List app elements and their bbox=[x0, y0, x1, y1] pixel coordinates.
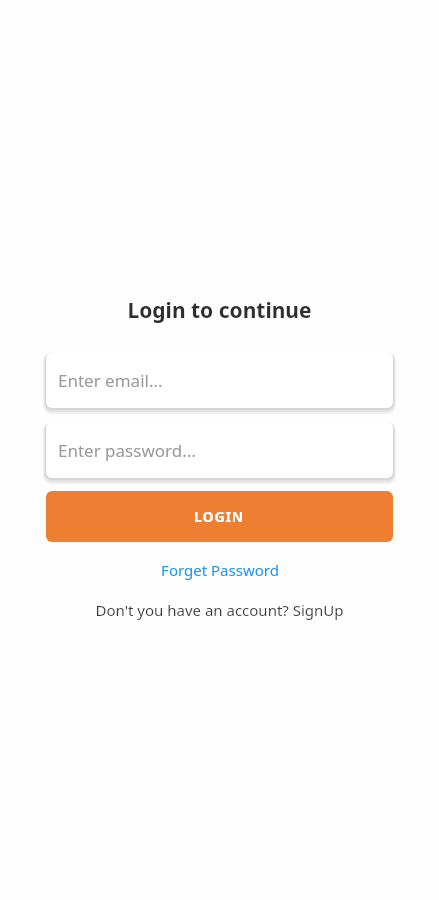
staticText: LOGIN bbox=[194, 507, 245, 526]
button[interactable]: Don't you have an account? SignUp bbox=[89, 597, 350, 623]
staticText: Enter password... bbox=[58, 439, 196, 462]
staticText: Enter email... bbox=[58, 369, 163, 392]
staticText: Login to continue bbox=[127, 296, 312, 325]
button[interactable]: LOGIN bbox=[46, 491, 393, 542]
button[interactable]: Enter password... bbox=[46, 422, 393, 478]
button[interactable]: Forget Password bbox=[155, 557, 285, 583]
staticText: Don't you have an account? SignUp bbox=[95, 600, 344, 620]
staticText: Forget Password bbox=[161, 560, 279, 580]
button[interactable]: Enter email... bbox=[46, 352, 393, 408]
